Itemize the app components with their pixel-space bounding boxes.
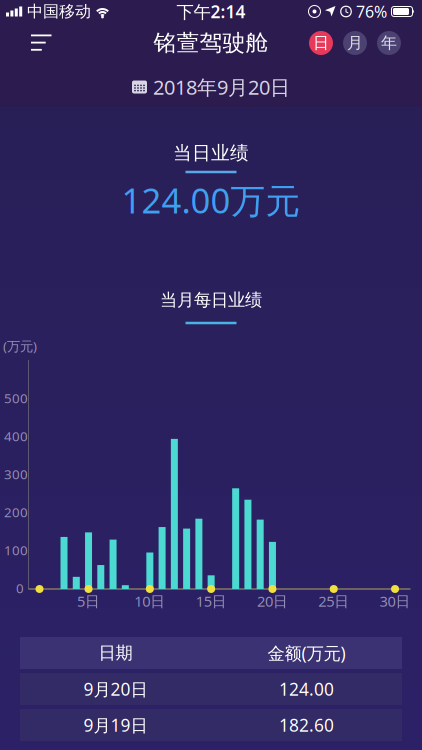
staticText: 30日 xyxy=(379,591,410,611)
staticText: 铭萱驾驶舱 xyxy=(153,29,268,57)
staticText: 124.00 xyxy=(279,677,334,700)
button[interactable]: 年 xyxy=(377,31,401,55)
staticText: 500 xyxy=(4,389,28,407)
button[interactable]: 月 xyxy=(343,31,367,55)
staticText: 182.60 xyxy=(279,713,334,736)
staticText: 20日 xyxy=(257,591,288,611)
staticText: 200 xyxy=(4,503,28,521)
staticText: 2018年9月20日 xyxy=(153,74,290,100)
staticText: 124.00万元 xyxy=(121,177,300,223)
staticText: 年 xyxy=(381,33,397,53)
button[interactable]: 2018年9月20日 xyxy=(132,70,290,100)
staticText: 76% xyxy=(356,1,387,22)
staticText: 月 xyxy=(347,33,363,53)
staticText: 日 xyxy=(313,33,329,53)
staticText: 15日 xyxy=(196,591,227,611)
staticText: 5日 xyxy=(77,591,100,611)
staticText: 300 xyxy=(4,465,28,483)
staticText: (万元) xyxy=(3,337,37,355)
staticText: 当月每日业绩 xyxy=(160,289,262,311)
staticText: 下午2:14 xyxy=(176,0,245,23)
staticText: 9月19日 xyxy=(83,713,147,736)
staticText: 25日 xyxy=(318,591,349,611)
button[interactable]: 菜单 xyxy=(0,34,52,51)
staticText: 日期 xyxy=(98,642,132,664)
staticText: 400 xyxy=(4,427,28,445)
staticText: 100 xyxy=(4,541,28,559)
staticText: 金额(万元) xyxy=(267,641,345,664)
staticText: 9月20日 xyxy=(83,677,147,700)
button[interactable]: 日 xyxy=(309,31,333,55)
staticText: 10日 xyxy=(134,591,165,611)
staticText: 当日业绩 xyxy=(173,141,249,164)
staticText: 中国移动 xyxy=(27,2,91,21)
staticText: 0 xyxy=(16,579,24,597)
